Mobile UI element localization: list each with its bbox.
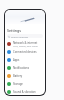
staticText: Search settings xyxy=(11,35,29,38)
staticText: Connected devices xyxy=(13,50,37,54)
staticText: Wi‑Fi, mobile, data usage xyxy=(13,45,38,48)
button[interactable]: Search settings xyxy=(7,34,43,38)
staticText: Battery xyxy=(13,74,23,78)
button[interactable]: Network & internet xyxy=(5,40,45,48)
button[interactable]: Apps xyxy=(5,56,45,64)
staticText: Sound & vibration xyxy=(13,90,36,94)
button[interactable]: Sound & vibration xyxy=(5,88,45,95)
button[interactable]: Battery xyxy=(5,72,45,80)
staticText: Storage xyxy=(13,82,23,86)
staticText: Settings xyxy=(7,28,21,33)
staticText: Network & internet xyxy=(13,41,38,45)
staticText: Apps xyxy=(13,58,20,62)
button[interactable]: Notifications xyxy=(5,64,45,72)
staticText: Notifications xyxy=(13,66,29,70)
button[interactable]: Connected devices xyxy=(5,48,45,56)
button[interactable]: Storage xyxy=(5,80,45,88)
